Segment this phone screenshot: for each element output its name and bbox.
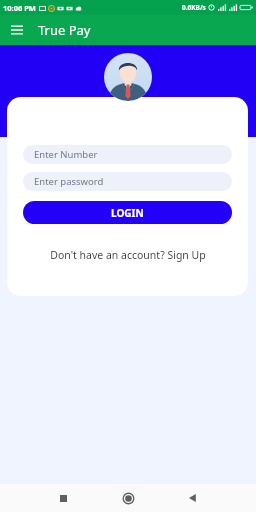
staticText: Enter password bbox=[34, 175, 104, 188]
staticText: True Pay bbox=[38, 21, 91, 39]
staticText: LOGIN bbox=[111, 206, 144, 220]
button[interactable]: LOGIN bbox=[23, 201, 232, 224]
button[interactable]: Profile avatar bbox=[104, 53, 152, 101]
button[interactable]: Back bbox=[182, 487, 204, 509]
button[interactable]: Open navigation menu bbox=[5, 18, 29, 42]
button[interactable]: Enter password bbox=[23, 172, 232, 191]
staticText: 10:06 PM bbox=[3, 3, 36, 13]
button[interactable]: Home bbox=[117, 487, 139, 509]
button[interactable]: Enter Number bbox=[23, 145, 232, 164]
button[interactable]: Recent apps bbox=[52, 487, 74, 509]
button[interactable]: Don't have an account? Sign Up bbox=[23, 248, 232, 262]
staticText: Don't have an account? Sign Up bbox=[50, 248, 206, 262]
staticText: 0.6KB/s bbox=[182, 3, 206, 12]
staticText: Enter Number bbox=[34, 148, 98, 161]
